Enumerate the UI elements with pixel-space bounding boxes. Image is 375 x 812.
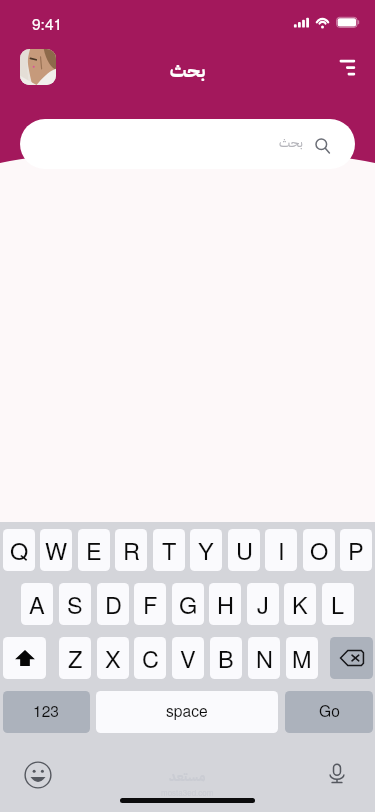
- staticText: E: [86, 533, 102, 567]
- staticText: بحث: [0, 57, 375, 85]
- staticText: S: [67, 587, 83, 621]
- button[interactable]: Filter: [332, 52, 362, 82]
- staticText: Z: [68, 641, 83, 675]
- staticText: G: [179, 587, 198, 621]
- staticText: L: [331, 587, 345, 621]
- staticText: D: [105, 587, 122, 621]
- staticText: P: [348, 533, 364, 567]
- staticText: B: [218, 641, 234, 675]
- staticText: M: [292, 641, 312, 675]
- button[interactable]: Shift: [3, 637, 46, 679]
- staticText: O: [310, 533, 329, 567]
- staticText: J: [257, 587, 269, 621]
- button[interactable]: L: [322, 583, 354, 625]
- button[interactable]: Profile: [20, 49, 56, 85]
- button[interactable]: Z: [59, 637, 91, 679]
- button[interactable]: Emoji keyboard: [23, 760, 53, 790]
- staticText: N: [256, 641, 273, 675]
- button[interactable]: Y: [190, 529, 222, 571]
- button[interactable]: T: [153, 529, 185, 571]
- button[interactable]: J: [247, 583, 279, 625]
- button[interactable]: H: [209, 583, 241, 625]
- button[interactable]: 123: [3, 691, 90, 733]
- button[interactable]: Q: [3, 529, 35, 571]
- staticText: X: [105, 641, 121, 675]
- staticText: space: [166, 699, 208, 721]
- staticText: Y: [198, 533, 214, 567]
- button[interactable]: G: [172, 583, 204, 625]
- staticText: mosta3ed.com: [161, 787, 214, 798]
- button[interactable]: E: [78, 529, 110, 571]
- button[interactable]: Dictation: [322, 758, 352, 788]
- staticText: Q: [10, 533, 29, 567]
- button[interactable]: M: [286, 637, 318, 679]
- staticText: C: [142, 641, 159, 675]
- staticText: V: [180, 641, 196, 675]
- button[interactable]: W: [40, 529, 72, 571]
- button[interactable]: B: [210, 637, 242, 679]
- button[interactable]: V: [172, 637, 204, 679]
- staticText: 123: [33, 699, 60, 721]
- button[interactable]: [20, 119, 355, 169]
- button[interactable]: R: [115, 529, 147, 571]
- staticText: مستعد: [169, 767, 206, 787]
- staticText: Go: [319, 699, 340, 721]
- button[interactable]: O: [303, 529, 335, 571]
- button[interactable]: space: [96, 691, 278, 733]
- staticText: بحث: [279, 133, 303, 153]
- button[interactable]: A: [21, 583, 53, 625]
- staticText: I: [278, 533, 285, 567]
- button[interactable]: U: [228, 529, 260, 571]
- button[interactable]: C: [134, 637, 166, 679]
- button[interactable]: Go: [285, 691, 373, 733]
- staticText: R: [123, 533, 140, 567]
- button[interactable]: Backspace: [330, 637, 373, 679]
- staticText: H: [217, 587, 234, 621]
- button[interactable]: F: [134, 583, 166, 625]
- staticText: U: [236, 533, 253, 567]
- button[interactable]: N: [248, 637, 280, 679]
- button[interactable]: D: [97, 583, 129, 625]
- staticText: T: [162, 533, 177, 567]
- staticText: W: [45, 533, 68, 567]
- button[interactable]: X: [97, 637, 129, 679]
- button[interactable]: S: [59, 583, 91, 625]
- staticText: A: [29, 587, 45, 621]
- button[interactable]: K: [284, 583, 316, 625]
- staticText: 9:41: [32, 12, 63, 34]
- staticText: K: [292, 587, 308, 621]
- staticText: F: [143, 587, 158, 621]
- button[interactable]: P: [340, 529, 372, 571]
- button[interactable]: I: [265, 529, 297, 571]
